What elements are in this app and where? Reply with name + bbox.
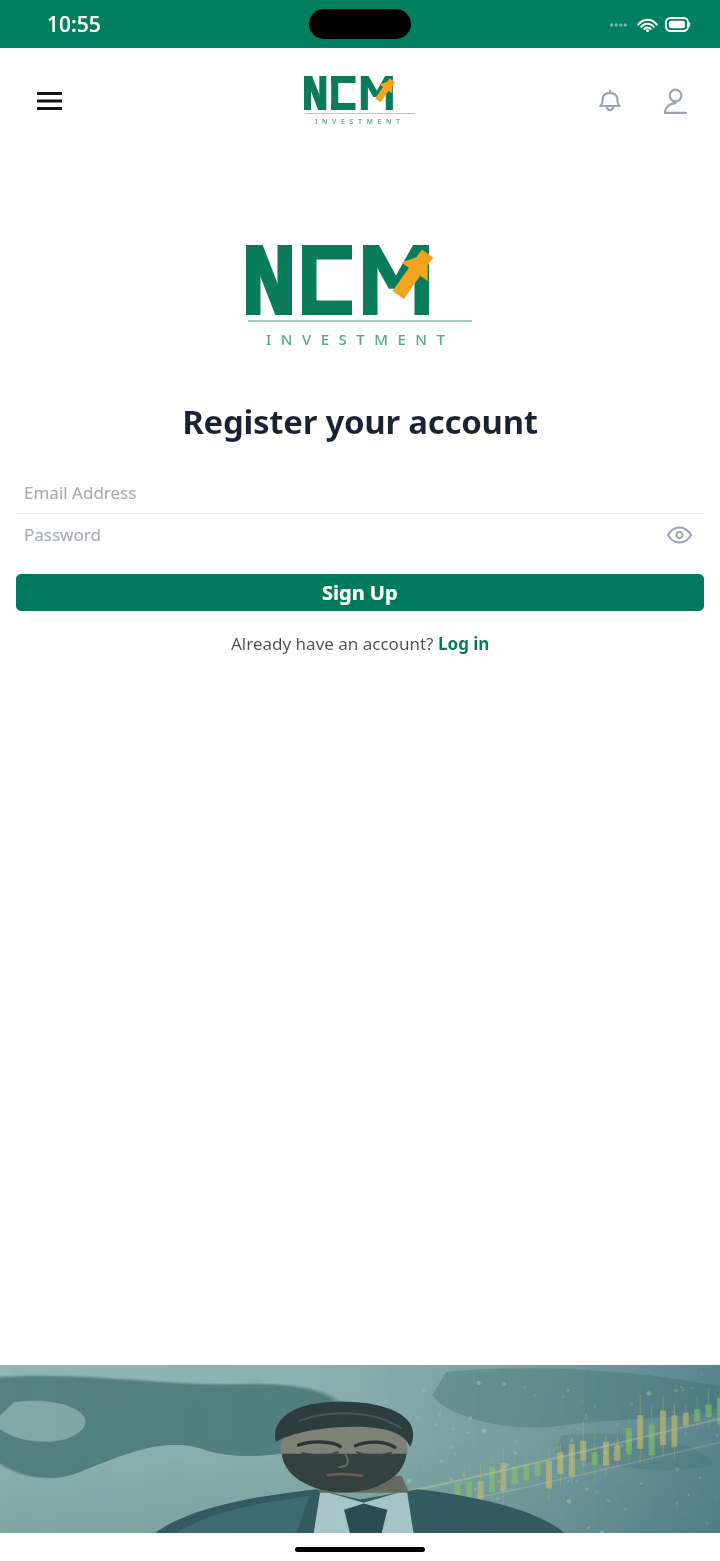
button[interactable]: Email Address bbox=[16, 472, 704, 513]
button[interactable]: Sign Up bbox=[16, 574, 704, 611]
button[interactable]: Menu bbox=[26, 78, 72, 124]
button[interactable]: Log in bbox=[438, 632, 490, 655]
button[interactable]: Password bbox=[16, 514, 704, 555]
staticText: INVESTMENT bbox=[266, 329, 455, 349]
staticText: Sign Up bbox=[322, 579, 398, 606]
staticText: Already have an account? bbox=[231, 632, 438, 655]
staticText: INVESTMENT bbox=[315, 117, 405, 127]
staticText: Email Address bbox=[24, 481, 137, 504]
staticText: 10:55 bbox=[47, 10, 101, 39]
staticText: Log in bbox=[438, 632, 490, 655]
button[interactable]: Notifications bbox=[587, 78, 633, 124]
button[interactable]: Profile bbox=[652, 78, 698, 124]
staticText: Register your account bbox=[0, 399, 720, 444]
button[interactable]: Show password bbox=[662, 518, 696, 552]
staticText: Password bbox=[24, 523, 101, 546]
